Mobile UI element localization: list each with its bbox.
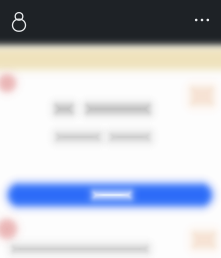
- button[interactable]: Account: [8, 8, 30, 32]
- button[interactable]: More options: [191, 8, 213, 32]
- button[interactable]: [0, 0, 221, 258]
